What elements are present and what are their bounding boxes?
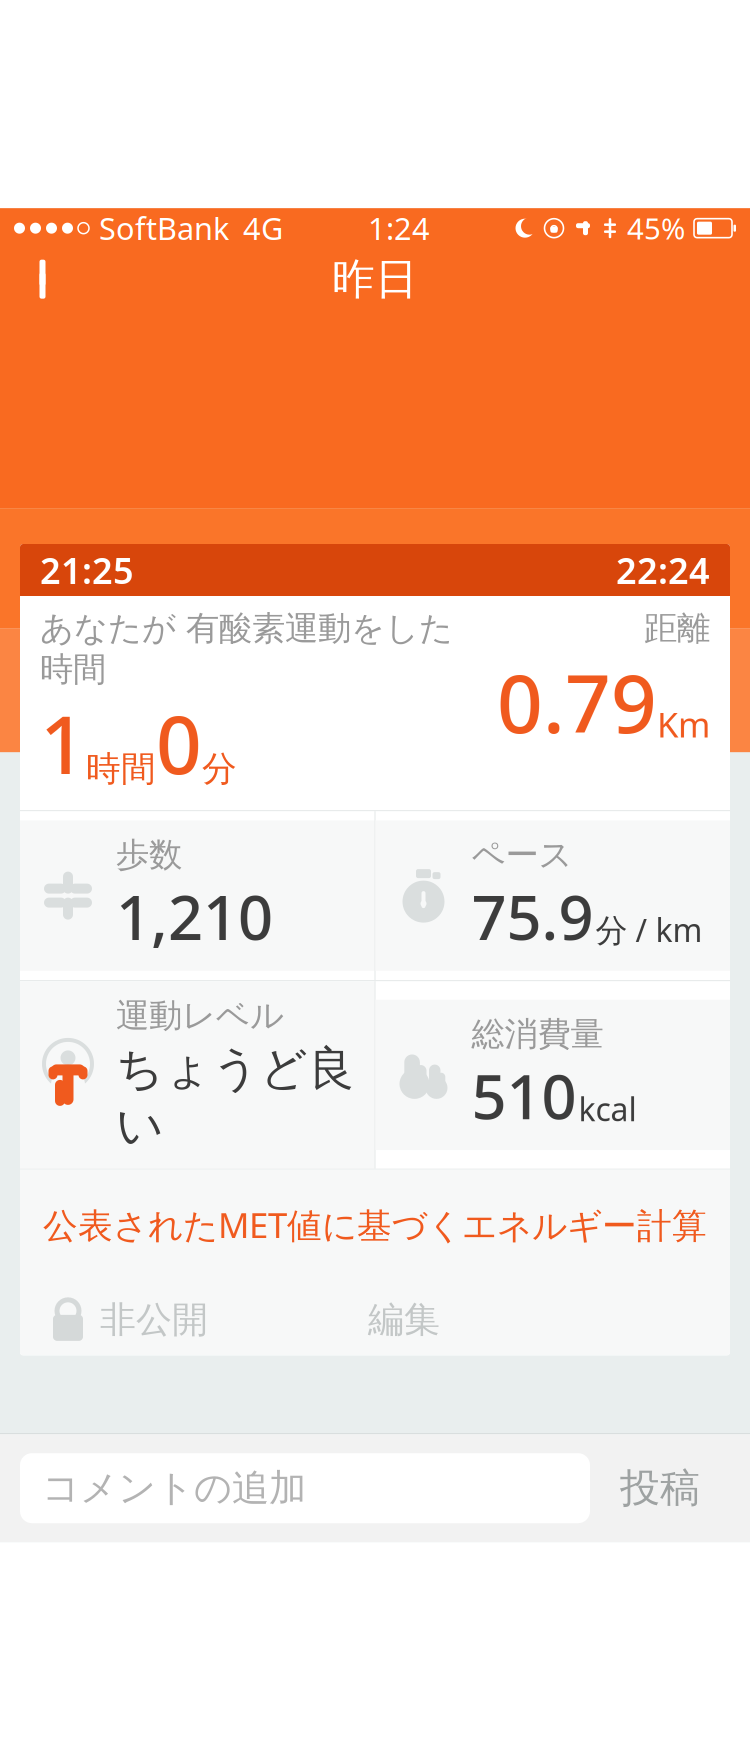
staticText: ちょうど良い [116, 1040, 355, 1155]
staticText: 22:24 [616, 546, 710, 594]
staticText: 分 / km [595, 908, 702, 951]
staticText: 歩数 [116, 834, 182, 875]
staticText: 0.79 [497, 649, 657, 755]
staticText: コメントの追加 [42, 1465, 306, 1511]
button[interactable]: 戻る [14, 247, 78, 311]
staticText: 距離 [644, 608, 710, 649]
staticText: 45% [627, 209, 685, 248]
button[interactable]: 総消費量 [375, 1000, 730, 1150]
staticText: 75.9 [471, 875, 593, 957]
button[interactable]: コメントの追加 [20, 1453, 590, 1523]
staticText: SoftBank [99, 208, 229, 248]
button[interactable]: ペース [375, 820, 730, 971]
staticText: 非公開 [100, 1298, 208, 1342]
staticText: 総消費量 [471, 1014, 603, 1055]
button[interactable]: 投稿 [590, 1453, 730, 1523]
staticText: 編集 [368, 1298, 440, 1342]
button[interactable]: 運動レベル [20, 981, 374, 1169]
staticText: 時間 [86, 747, 156, 790]
staticText: 分 [202, 747, 237, 790]
staticText: 投稿 [620, 1464, 700, 1513]
staticText: 510 [471, 1055, 576, 1136]
staticText: kcal [578, 1088, 636, 1130]
staticText: 1 [40, 690, 86, 796]
staticText: 0 [156, 690, 202, 796]
staticText: 運動レベル [116, 995, 284, 1036]
button[interactable]: 歩数 [20, 820, 374, 971]
staticText: ペース [471, 834, 572, 875]
staticText: 4G [243, 208, 283, 248]
staticText: 公表されたMET値に基づくエネルギー計算 [43, 1202, 707, 1248]
button[interactable]: 非公開 [50, 1292, 208, 1348]
staticText: 1,210 [116, 875, 273, 957]
staticText: 昨日 [332, 253, 418, 305]
staticText: 21:25 [40, 546, 134, 594]
staticText: 1:24 [368, 208, 430, 248]
staticText: あなたが 有酸素運動をした 時間 [40, 608, 453, 690]
button[interactable]: 公表されたMET値に基づくエネルギー計算 [20, 1192, 730, 1258]
staticText: Km [657, 701, 710, 747]
button[interactable]: 編集 [368, 1292, 440, 1348]
